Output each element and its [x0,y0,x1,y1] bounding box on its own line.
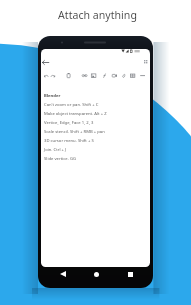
button[interactable]: Back [55,266,71,282]
button[interactable]: Paste [65,72,72,79]
button[interactable]: Insert divider [139,72,146,79]
other: Status icons [121,49,143,55]
button[interactable]: Redo [49,72,56,79]
staticText: Join. Ctrl + J [44,147,67,153]
staticText: Vertice, Edge, Face 1, 2, 3 [44,120,94,126]
staticText: Can't zoom or pan. Shift + C [44,102,99,108]
button[interactable]: Italic [101,72,108,79]
staticText: Scale stencil. Shift + RMB + pan [44,129,105,135]
staticText: Attach anything [2,8,191,22]
button[interactable]: Undo [43,72,50,79]
button[interactable]: Insert link [81,72,88,79]
button[interactable]: Back [41,56,51,68]
button[interactable]: Home [88,266,104,282]
button[interactable]: More options [141,57,150,66]
staticText: Slide vertice. GG [44,156,76,162]
button[interactable]: Insert image [90,72,97,79]
staticText: Make object transparent. Alt + Z [44,111,107,117]
button[interactable]: Recent apps [122,266,138,282]
staticText: 3D cursor menu. Shift + S [44,138,94,144]
button[interactable]: Insert video [111,72,118,79]
button[interactable]: Insert table [129,72,136,79]
staticText: Blender [44,93,61,99]
button[interactable]: Attach file [120,72,127,79]
